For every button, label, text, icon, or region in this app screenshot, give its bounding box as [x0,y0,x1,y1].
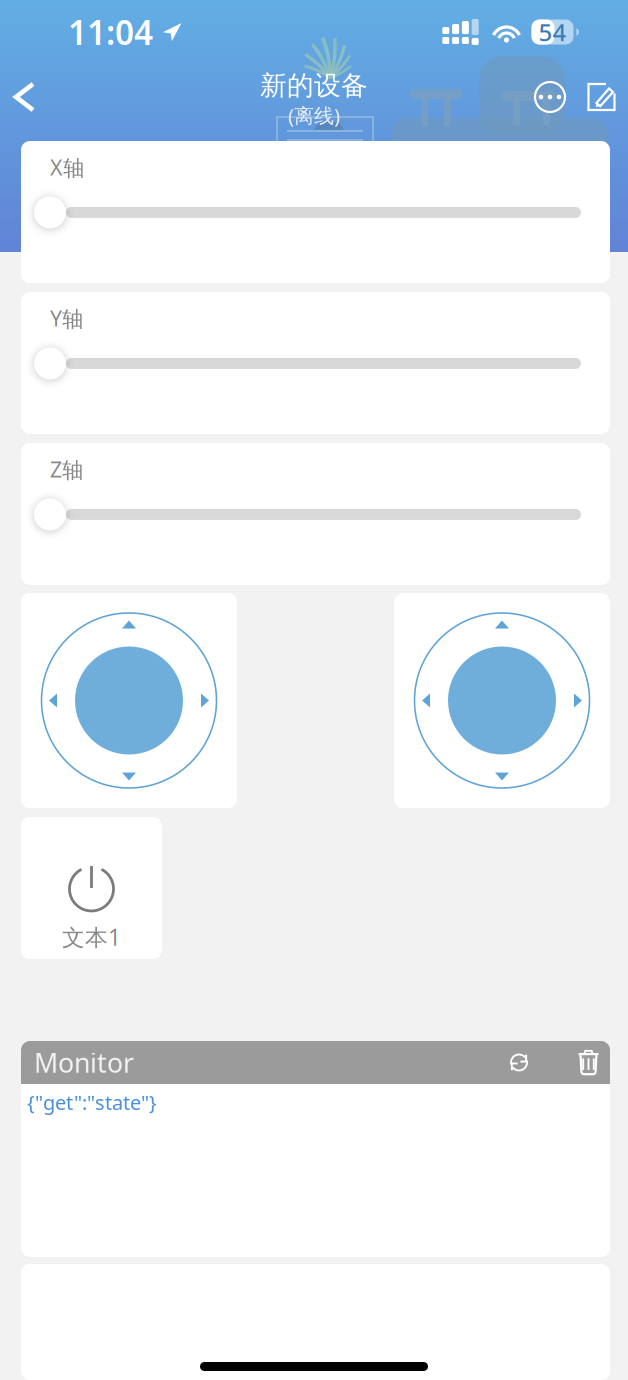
staticText: Z轴 [50,455,83,483]
staticText: 新的设备 [260,69,368,102]
staticText: 54 [538,16,566,48]
staticText: 11:04 [68,10,153,54]
button[interactable]: Up [113,611,145,637]
staticText: (离线) [288,102,340,129]
button[interactable]: Refresh [497,1041,541,1083]
staticText: Monitor [34,1045,134,1080]
button[interactable]: Edit [587,72,622,121]
button[interactable]: More [531,72,569,122]
button[interactable]: Down [113,763,145,789]
staticText: Y轴 [50,304,83,332]
staticText: X轴 [50,153,84,181]
button[interactable]: Right [192,684,218,716]
button[interactable]: Left [40,684,66,716]
button[interactable]: Left [413,684,439,716]
button[interactable]: Clear log [567,1041,610,1083]
staticText: 文本1 [62,922,121,952]
button[interactable]: Back [6,69,51,125]
button[interactable]: Up [486,611,518,637]
button[interactable]: Right [565,684,591,716]
staticText: {"get":"state"} [27,1089,157,1116]
button[interactable]: Down [486,763,518,789]
